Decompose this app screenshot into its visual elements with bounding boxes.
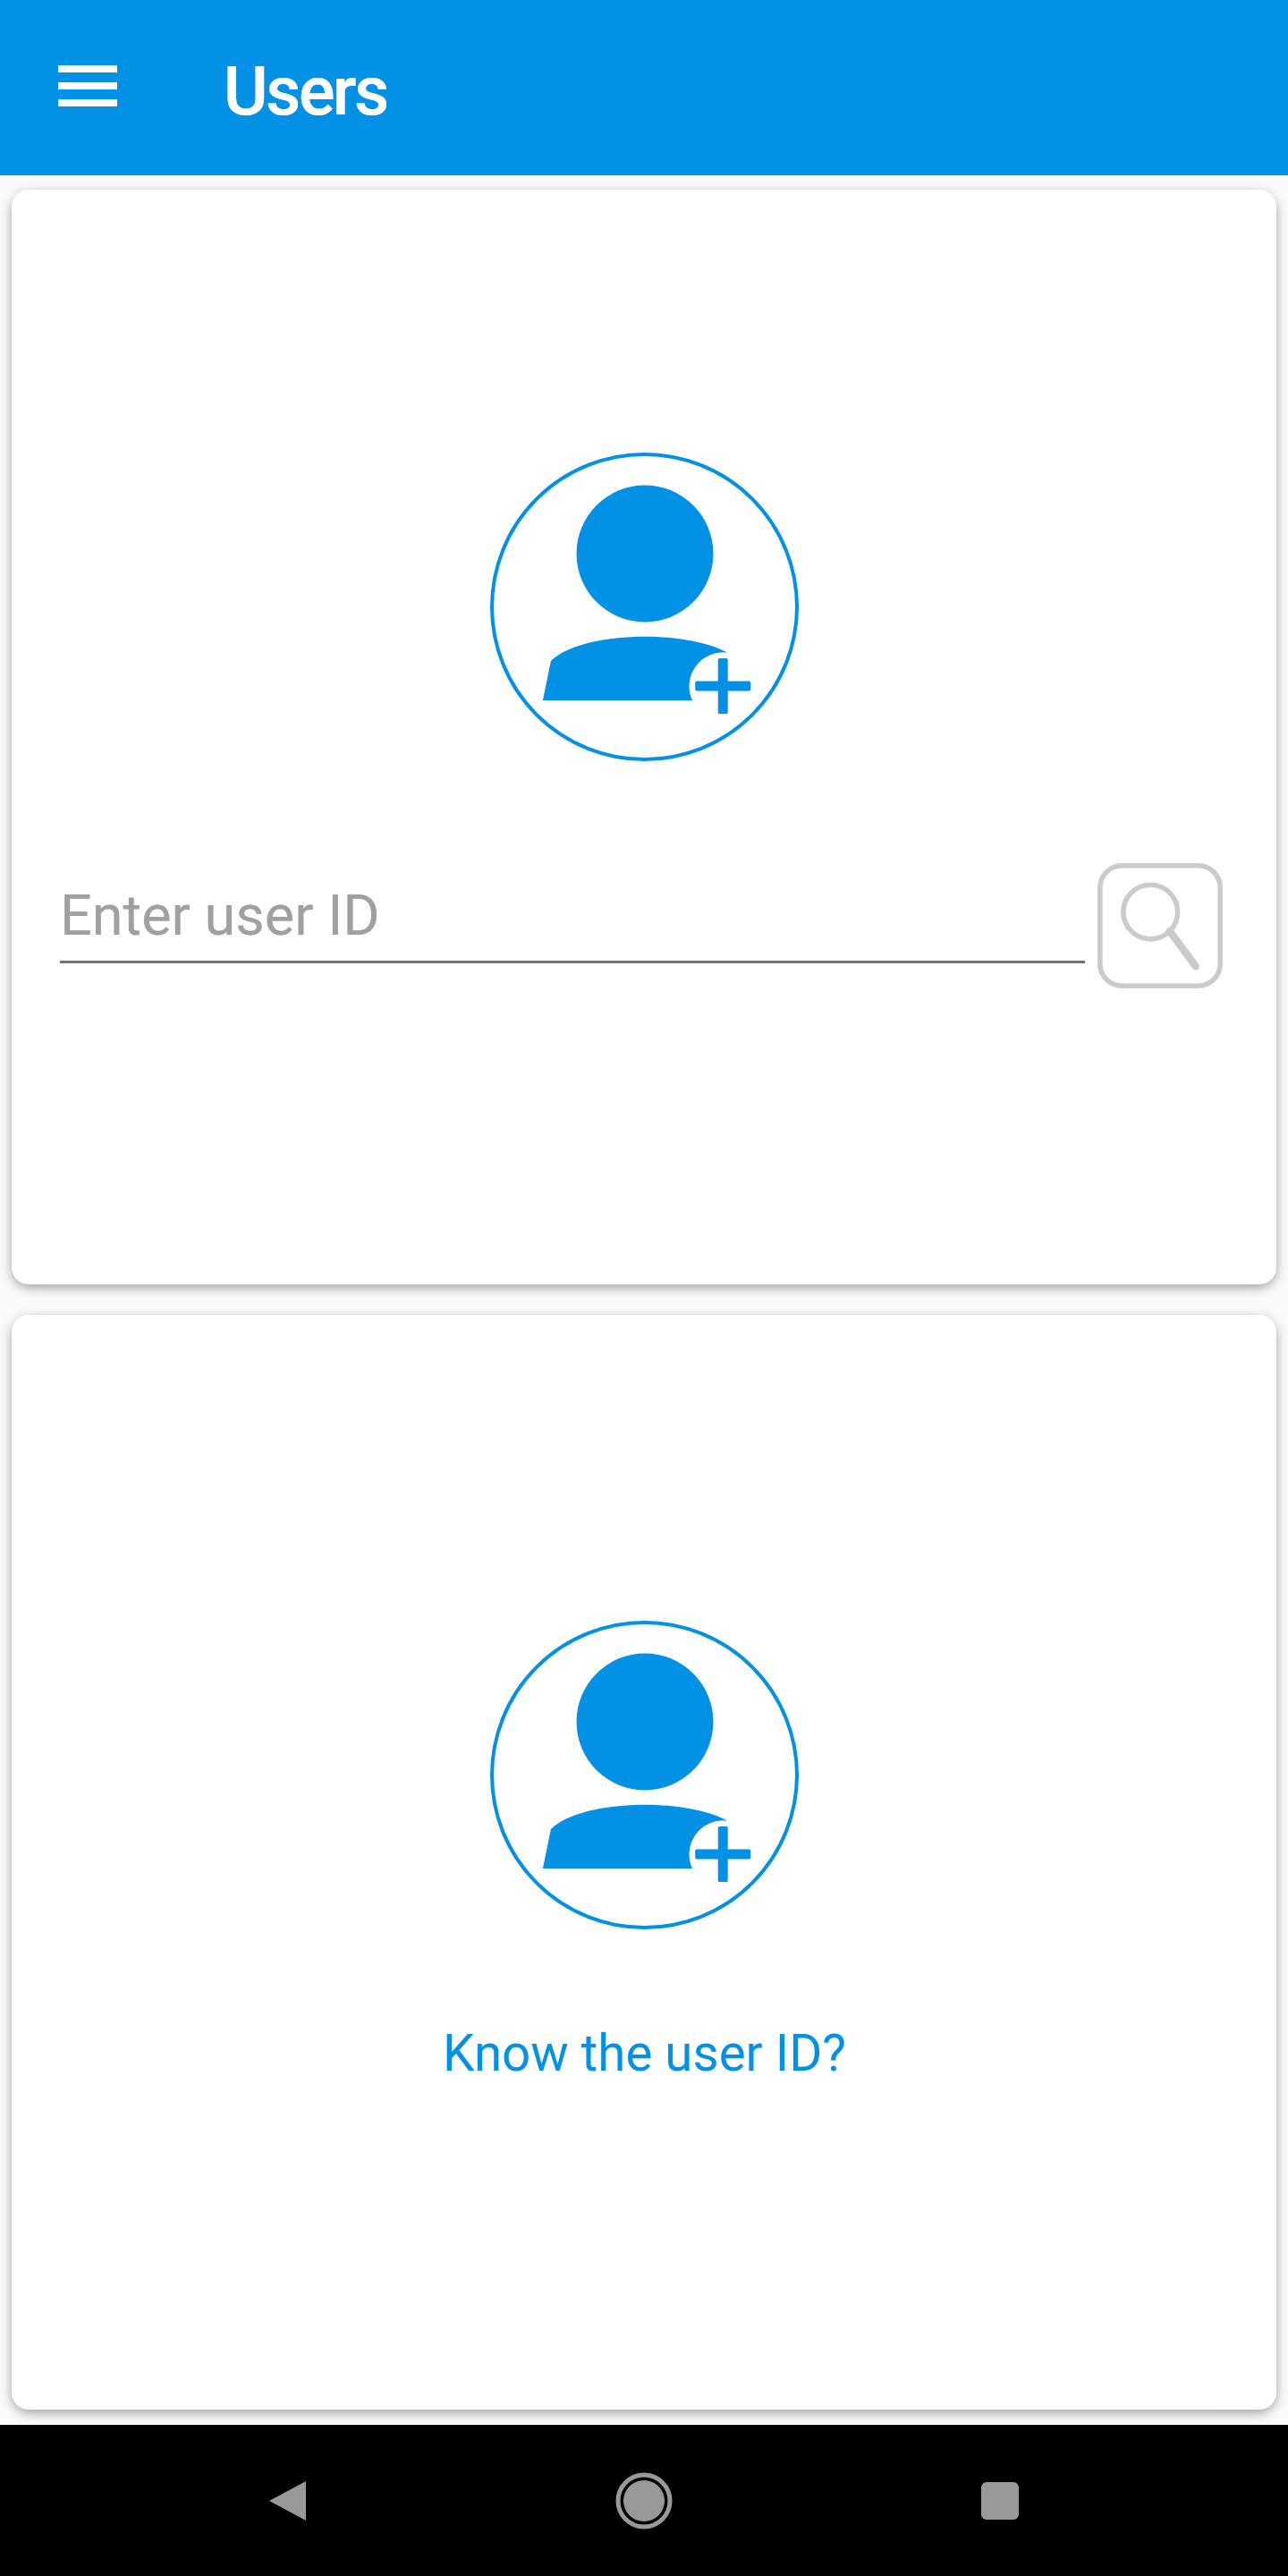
button[interactable]: Back [216, 2429, 359, 2572]
button[interactable]: Open navigation menu [29, 27, 147, 145]
staticText: Enter user ID [60, 883, 380, 949]
staticText: Know the user ID? [443, 2024, 846, 2083]
button[interactable]: Recent apps [928, 2429, 1072, 2572]
staticText: Users [224, 51, 387, 131]
button[interactable]: Know the user ID? [443, 2024, 846, 2083]
button[interactable]: Search [1097, 863, 1223, 988]
button[interactable]: Home [572, 2429, 716, 2572]
